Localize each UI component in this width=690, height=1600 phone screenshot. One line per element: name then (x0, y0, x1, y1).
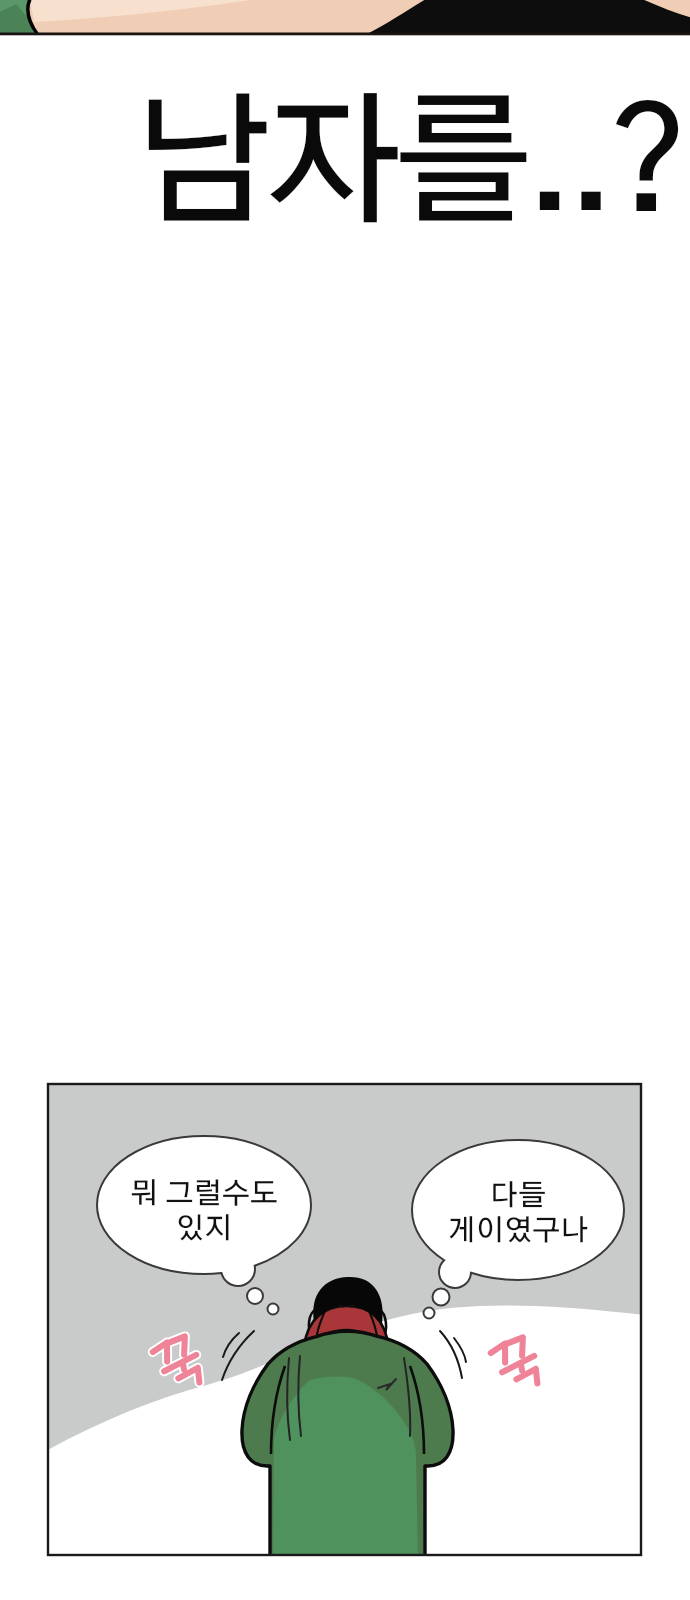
button[interactable]: 남자를..? 웹툰 컷 보기 (0, 0, 690, 1600)
